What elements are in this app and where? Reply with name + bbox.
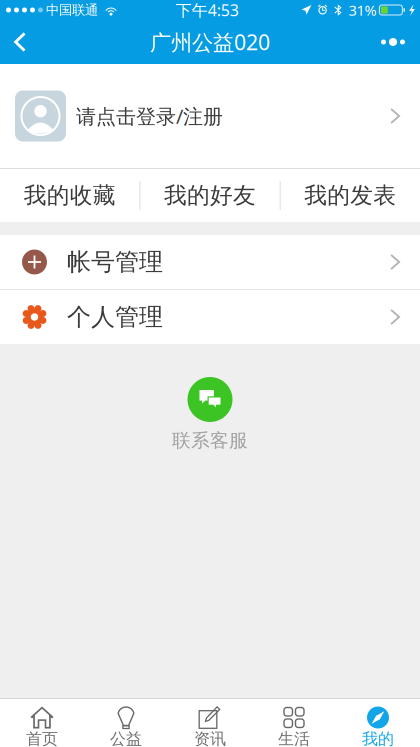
button[interactable]: 资讯 — [168, 699, 252, 747]
button[interactable]: 首页 — [0, 699, 84, 747]
button[interactable]: 个人管理 — [0, 290, 420, 344]
staticText: 我的 — [362, 729, 394, 747]
button[interactable]: 我的好友 — [140, 169, 280, 222]
button[interactable]: 请点击登录/注册 — [0, 64, 420, 168]
staticText: 下午4:53 — [176, 0, 239, 21]
staticText: 我的好友 — [164, 182, 256, 209]
staticText: 公益 — [110, 729, 142, 747]
staticText: 中国联通 — [46, 2, 98, 18]
staticText: 我的发表 — [304, 182, 396, 209]
staticText: 请点击登录/注册 — [76, 103, 223, 129]
staticText: 首页 — [26, 729, 58, 747]
button[interactable]: 我的收藏 — [0, 169, 139, 222]
button[interactable]: 我的 — [336, 699, 420, 747]
button[interactable]: 我的发表 — [281, 169, 420, 222]
button[interactable]: More — [371, 20, 415, 64]
button[interactable]: 生活 — [252, 699, 336, 747]
staticText: 广州公益020 — [150, 28, 270, 56]
staticText: 31% — [348, 0, 376, 20]
button[interactable]: 公益 — [84, 699, 168, 747]
staticText: 帐号管理 — [67, 247, 163, 277]
staticText: 联系客服 — [172, 429, 248, 452]
staticText: 资讯 — [194, 729, 226, 747]
staticText: 我的收藏 — [24, 182, 116, 209]
button[interactable]: 联系客服 — [0, 344, 420, 452]
staticText: 个人管理 — [67, 302, 163, 332]
button[interactable]: 帐号管理 — [0, 235, 420, 289]
staticText: 生活 — [278, 729, 310, 747]
button[interactable]: Back — [0, 20, 40, 64]
